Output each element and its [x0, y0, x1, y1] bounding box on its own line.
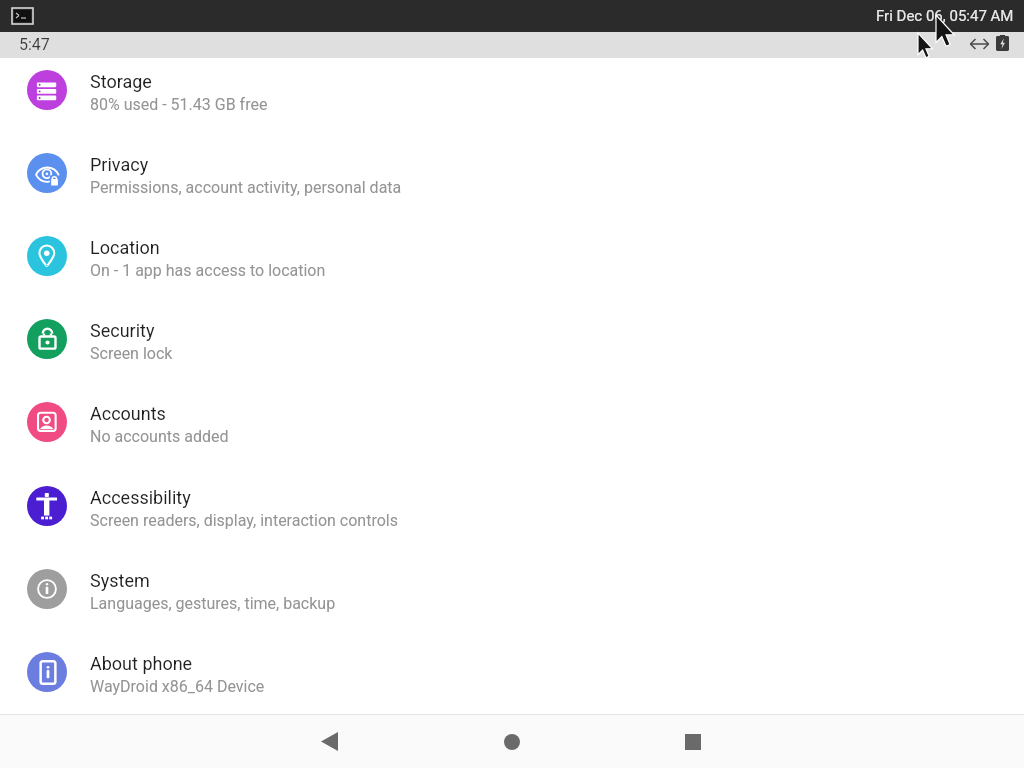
button[interactable]: Privacy — [0, 131, 1024, 214]
staticText: About phone — [90, 653, 193, 674]
button[interactable]: Location — [0, 214, 1024, 297]
button[interactable]: Accounts — [0, 380, 1024, 463]
staticText: Screen readers, display, interaction con… — [90, 511, 398, 530]
staticText: On - 1 app has access to location — [90, 261, 326, 280]
staticText: 5:47 — [19, 35, 50, 54]
staticText: Storage — [90, 71, 152, 92]
staticText: Screen lock — [90, 344, 173, 363]
staticText: WayDroid x86_64 Device — [90, 677, 265, 696]
staticText: Security — [90, 320, 155, 341]
staticText: No accounts added — [90, 427, 229, 446]
button[interactable]: Storage — [0, 48, 1024, 131]
button[interactable]: Back — [297, 715, 361, 768]
staticText: Permissions, account activity, personal … — [90, 178, 402, 197]
button[interactable]: System — [0, 547, 1024, 630]
staticText: System — [90, 570, 150, 591]
button[interactable]: Accessibility — [0, 464, 1024, 547]
button[interactable]: Recent apps — [661, 715, 725, 768]
button[interactable]: Home — [480, 715, 544, 768]
button[interactable]: About phone — [0, 630, 1024, 713]
staticText: Privacy — [90, 154, 149, 175]
button[interactable]: Security — [0, 297, 1024, 380]
staticText: Accessibility — [90, 487, 191, 508]
staticText: 80% used - 51.43 GB free — [90, 95, 268, 114]
staticText: Accounts — [90, 403, 166, 424]
staticText: Location — [90, 237, 160, 258]
staticText: Languages, gestures, time, backup — [90, 594, 336, 613]
staticText: Fri Dec 06, 05:47 AM — [876, 7, 1014, 25]
